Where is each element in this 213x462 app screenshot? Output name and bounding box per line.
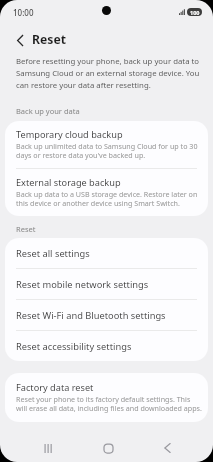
button[interactable]: Recent apps (20, 430, 76, 462)
staticText: Back up your data (16, 107, 80, 116)
staticText: Back up data to a USB storage device. Re… (16, 190, 202, 208)
button[interactable]: External storage backup (5, 169, 208, 216)
staticText: Reset all settings (16, 248, 90, 259)
staticText: Reset (32, 31, 66, 48)
button[interactable]: Reset mobile network settings (5, 269, 208, 299)
staticText: Reset Wi-Fi and Bluetooth settings (16, 310, 166, 321)
button[interactable]: Reset Wi-Fi and Bluetooth settings (5, 300, 208, 330)
button[interactable]: Back (139, 430, 195, 462)
staticText: Before resetting your phone, back up you… (16, 55, 202, 91)
button[interactable]: Temporary cloud backup (5, 121, 208, 168)
staticText: Temporary cloud backup (16, 129, 123, 140)
button[interactable]: Reset accessibility settings (5, 331, 208, 361)
button[interactable]: Reset all settings (5, 238, 208, 268)
staticText: Factory data reset (16, 382, 94, 393)
button[interactable]: Navigate up (4, 24, 36, 55)
staticText: Reset your phone to its factory default … (16, 395, 202, 413)
staticText: Reset accessibility settings (16, 341, 132, 352)
staticText: 10:00 (13, 7, 34, 18)
button[interactable]: Factory data reset (5, 373, 208, 422)
staticText: Reset (16, 225, 36, 234)
staticText: 100 (190, 9, 200, 16)
staticText: Reset mobile network settings (16, 279, 149, 290)
staticText: Back up unlimited data to Samsung Cloud … (16, 142, 202, 160)
button[interactable]: Home (80, 430, 136, 462)
staticText: External storage backup (16, 177, 121, 188)
